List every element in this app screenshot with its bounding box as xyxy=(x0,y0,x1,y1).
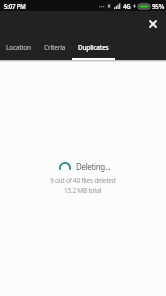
staticText: Deleting... xyxy=(76,161,111,172)
button[interactable]: Location xyxy=(0,39,37,60)
staticText: Duplicates xyxy=(78,43,109,52)
staticText: 15.2 MB total xyxy=(64,186,102,195)
staticText: 5:07 PM xyxy=(4,2,26,10)
staticText: 9 out of 40 files deleted xyxy=(50,176,116,185)
button[interactable]: Criteria xyxy=(37,39,72,60)
staticText: Criteria xyxy=(44,43,66,52)
button[interactable]: Duplicates xyxy=(72,39,115,60)
staticText: 95% xyxy=(152,2,165,10)
staticText: 4G xyxy=(123,2,131,10)
button[interactable]: Close xyxy=(143,14,162,33)
staticText: Location xyxy=(6,43,31,52)
